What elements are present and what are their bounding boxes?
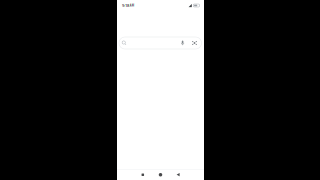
staticText: 9:18 [122, 3, 129, 8]
button[interactable] [119, 37, 201, 49]
button[interactable]: Recent apps [134, 169, 152, 180]
button[interactable]: Back [169, 169, 187, 180]
staticText: AM [130, 4, 134, 7]
button[interactable]: Home [152, 169, 169, 180]
